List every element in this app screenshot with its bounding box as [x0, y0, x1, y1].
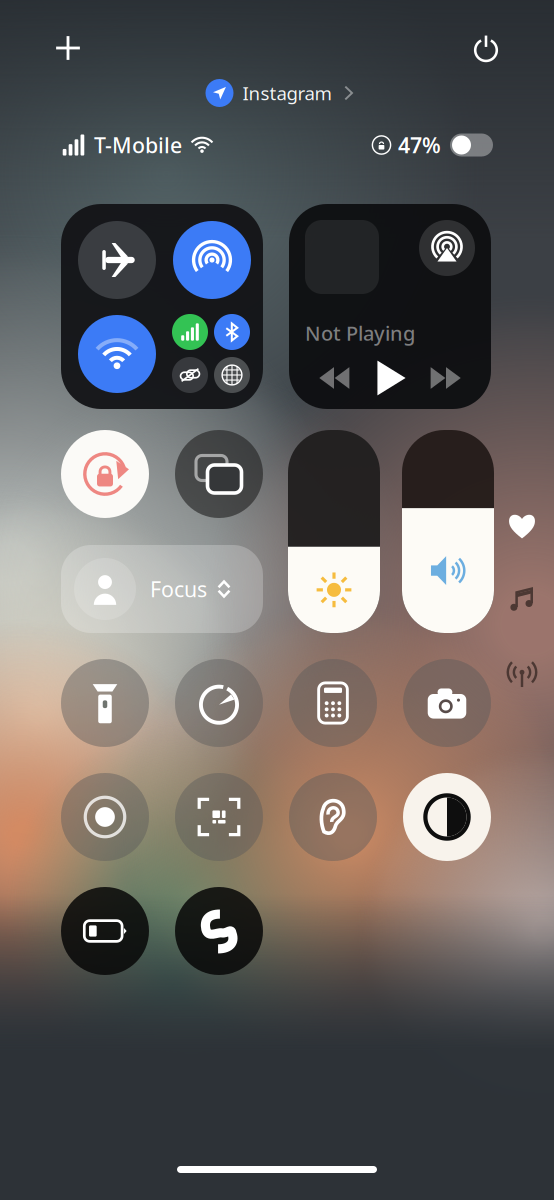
button[interactable]: Focus — [61, 545, 263, 633]
button[interactable]: AirPlay — [419, 220, 475, 276]
button[interactable]: Screen Recording — [61, 773, 149, 861]
button[interactable]: Wi-Fi — [78, 315, 156, 393]
button[interactable]: AirDrop — [173, 221, 251, 299]
button[interactable]: Low Power Mode — [61, 887, 149, 975]
staticText: 47% — [398, 131, 441, 159]
button[interactable]: Connectivity — [504, 659, 540, 689]
button[interactable]: Volume — [402, 430, 494, 633]
button[interactable]: Now Playing — [504, 585, 540, 615]
button[interactable]: Add a control — [41, 21, 95, 75]
button[interactable]: Power off — [459, 21, 513, 75]
button[interactable]: Shazam — [175, 887, 263, 975]
button[interactable]: Brightness — [288, 430, 380, 633]
button[interactable]: Rotation Lock — [61, 430, 149, 518]
button[interactable]: Flashlight — [61, 659, 149, 747]
button[interactable]: Instagram — [171, 76, 391, 110]
button[interactable]: Fast Forward — [423, 356, 469, 400]
button[interactable]: Calculator — [289, 659, 377, 747]
button[interactable]: Bluetooth — [214, 314, 250, 350]
button[interactable]: Screen Mirroring — [175, 430, 263, 518]
staticText: Not Playing — [305, 320, 415, 346]
button[interactable]: Hearing — [289, 773, 377, 861]
button[interactable]: Home — [504, 511, 540, 541]
button[interactable]: Dark Mode — [403, 773, 491, 861]
button[interactable]: Rewind — [311, 356, 357, 400]
button[interactable]: Camera — [403, 659, 491, 747]
staticText: T-Mobile — [94, 131, 182, 159]
button[interactable]: VPN — [214, 357, 250, 393]
button[interactable]: Airplane Mode — [78, 221, 156, 299]
button[interactable]: Cellular Data — [172, 314, 208, 350]
button[interactable]: Code Scanner — [175, 773, 263, 861]
staticText: Instagram — [242, 81, 331, 105]
button[interactable]: Satellite — [172, 357, 208, 393]
button[interactable]: Play — [367, 356, 413, 400]
staticText: Focus — [150, 575, 207, 603]
button[interactable]: Timer — [175, 659, 263, 747]
